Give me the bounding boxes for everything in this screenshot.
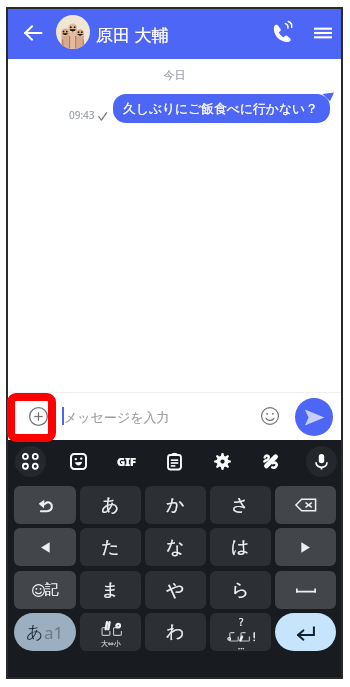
staticText: な [166,536,185,559]
button[interactable]: か [145,486,206,524]
other: Space [296,580,316,600]
staticText: ら [231,579,250,602]
button[interactable]: 大⇔小 [80,613,141,651]
button[interactable]: あ [14,613,76,651]
staticText: ? [239,615,244,629]
staticText: わ [166,621,185,644]
button[interactable]: Handwriting [255,446,286,477]
staticText: た [101,536,120,559]
button[interactable]: な [145,528,206,566]
button[interactable]: や [145,571,206,609]
button[interactable]: さ [210,486,271,524]
staticText: ま [101,579,120,602]
staticText: は [231,536,250,559]
staticText: や [166,579,185,602]
button[interactable]: GIF [111,446,142,477]
staticText: さ [231,494,250,517]
button[interactable]: Delete [275,486,336,524]
staticText: ··· [238,643,245,651]
button[interactable]: ? [210,613,271,651]
button[interactable]: た [80,528,141,566]
staticText: メッセージを入力 [64,409,170,425]
button[interactable]: Stickers [63,446,94,477]
other: Enter [295,622,316,643]
staticText: 記 [45,581,59,599]
staticText: か [166,494,185,517]
button[interactable]: Back [16,16,49,49]
button[interactable]: Clipboard [159,446,190,477]
button[interactable]: は [210,528,271,566]
button[interactable]: Right [275,528,336,566]
button[interactable]: Send [295,398,333,436]
staticText: 今日 [8,68,341,82]
button[interactable]: ま [80,571,141,609]
button[interactable]: ら [210,571,271,609]
staticText: a1 [44,621,64,644]
button[interactable]: Left [14,528,76,566]
other: Undo [36,496,55,515]
staticText: GIF [117,454,136,469]
button[interactable]: Settings [207,446,238,477]
button[interactable]: Voice input [306,446,337,477]
button[interactable]: Space [275,571,336,609]
button[interactable]: Apps [15,446,46,477]
staticText: あ [101,494,120,517]
staticText: 09:43 [69,108,95,122]
staticText: 久しぶりにご飯食べに行かない？ [123,101,318,117]
staticText: あ [26,622,44,643]
button[interactable]: Call [266,17,297,48]
staticText: 原田 大輔 [96,23,169,46]
button[interactable]: Menu [307,17,338,48]
staticText: 大⇔小 [101,639,121,648]
button[interactable]: あ [80,486,141,524]
button[interactable]: Enter [275,613,336,651]
button[interactable]: Add attachment [21,399,55,433]
button[interactable]: Emoji [255,401,285,431]
button[interactable]: わ [145,613,206,651]
other: Right [299,541,312,554]
button[interactable]: 記 [14,571,76,609]
other: Delete [294,493,318,517]
other: Left [39,541,52,554]
button[interactable]: Undo [14,486,76,524]
